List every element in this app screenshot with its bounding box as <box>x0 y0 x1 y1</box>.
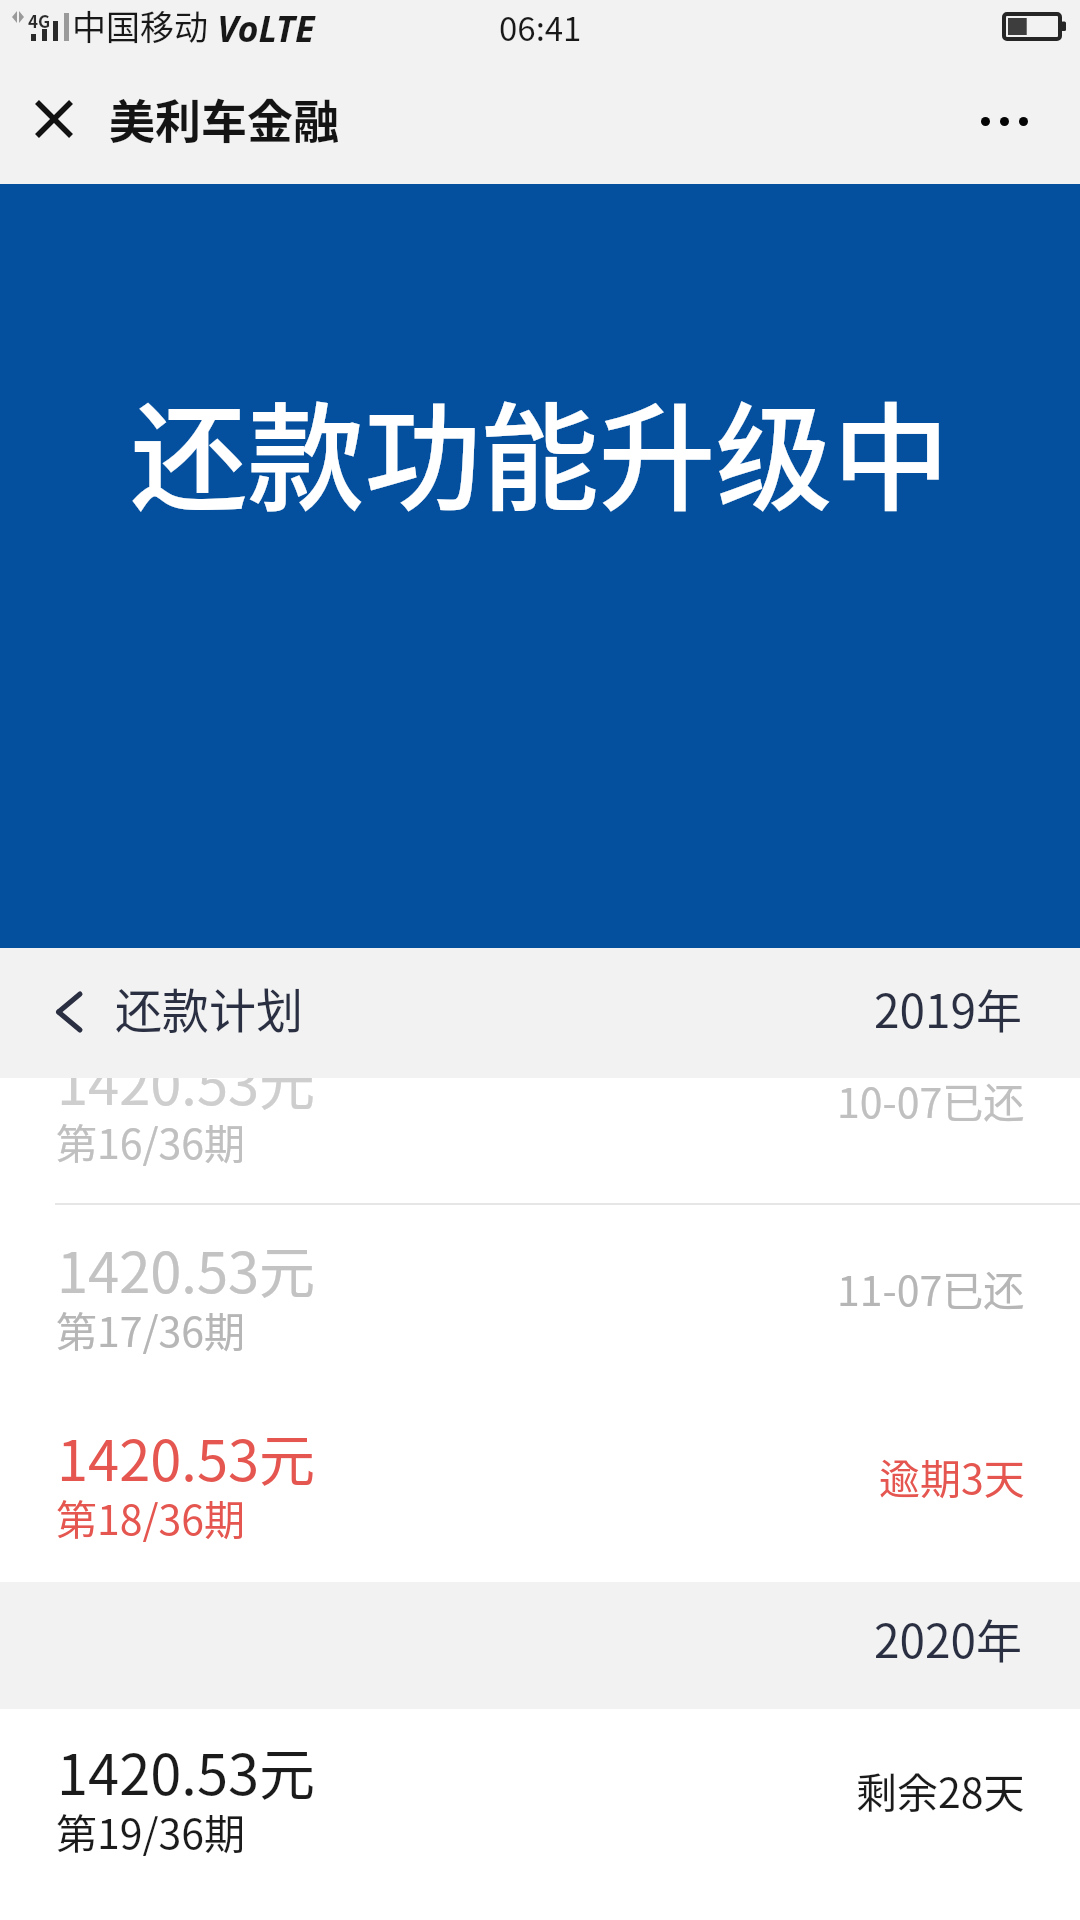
button[interactable]: 1420.53元 <box>0 992 1080 1180</box>
staticText: 第19/36期 <box>56 1801 246 1860</box>
staticText: 1420.53元 <box>57 1416 316 1497</box>
staticText: 11-07已还 <box>837 1258 1025 1317</box>
staticText: 2020年 <box>874 1605 1023 1672</box>
button[interactable]: Close <box>16 84 92 160</box>
staticText: 1420.53元 <box>57 1040 316 1121</box>
staticText: 2019年 <box>874 975 1023 1042</box>
staticText: 第17/36期 <box>56 1299 246 1358</box>
staticText: 第16/36期 <box>56 1111 246 1170</box>
staticText: 4G <box>28 8 51 33</box>
staticText: VoLTE <box>217 4 315 53</box>
button[interactable]: 还款计划 <box>56 976 303 1044</box>
button[interactable]: 1420.53元 <box>0 1682 1080 1870</box>
staticText: 中国移动 <box>72 1 208 50</box>
staticText: 剩余28天 <box>856 1760 1025 1819</box>
button[interactable]: 1420.53元 <box>0 1368 1080 1556</box>
staticText: 还款功能升级中 <box>0 365 1080 534</box>
button[interactable]: More options <box>954 78 1054 164</box>
staticText: 10-07已还 <box>837 1070 1025 1129</box>
button[interactable]: 1420.53元 <box>0 1180 1080 1368</box>
staticText: 1420.53元 <box>57 1228 316 1309</box>
staticText: 1420.53元 <box>57 1730 316 1811</box>
staticText: 逾期3天 <box>879 1446 1025 1505</box>
staticText: 06:41 <box>499 3 582 51</box>
staticText: 美利车金融 <box>109 85 339 152</box>
staticText: 第18/36期 <box>56 1487 246 1546</box>
staticText: 还款计划 <box>115 973 303 1041</box>
